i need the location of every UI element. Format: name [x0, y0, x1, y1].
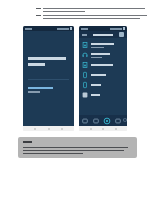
button[interactable]: Account	[119, 32, 124, 37]
button[interactable]	[79, 80, 127, 90]
button[interactable]	[79, 40, 127, 50]
button[interactable]: Discover	[101, 115, 112, 126]
button[interactable]	[79, 90, 127, 100]
button[interactable]	[79, 50, 127, 60]
button[interactable]: Settings	[123, 115, 127, 126]
button[interactable]	[79, 60, 127, 70]
button[interactable]: Library	[112, 115, 123, 126]
button[interactable]: Devices	[90, 115, 101, 126]
button[interactable]	[79, 70, 127, 80]
button[interactable]	[28, 87, 69, 93]
button[interactable]: Home	[79, 115, 90, 126]
